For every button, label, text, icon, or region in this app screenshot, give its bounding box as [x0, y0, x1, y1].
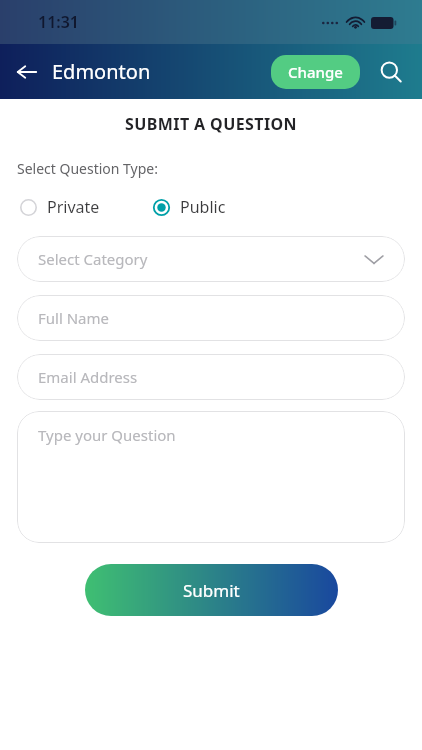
button[interactable]: Public: [153, 194, 226, 220]
button[interactable]: Change: [271, 55, 360, 89]
staticText: Select Category: [38, 249, 148, 269]
button[interactable]: Type your Question: [17, 411, 405, 543]
staticText: Public: [180, 196, 226, 218]
staticText: Email Address: [38, 367, 138, 387]
staticText: 11:31: [38, 11, 80, 33]
button[interactable]: Submit: [85, 564, 338, 616]
staticText: Type your Question: [38, 425, 176, 445]
staticText: SUBMIT A QUESTION: [0, 113, 422, 135]
staticText: Full Name: [38, 308, 109, 328]
staticText: Select Question Type:: [17, 159, 159, 178]
button[interactable]: Full Name: [17, 295, 405, 341]
button[interactable]: Search: [374, 55, 408, 89]
button[interactable]: Private: [20, 194, 100, 220]
button[interactable]: Back: [12, 52, 155, 91]
staticText: Private: [47, 196, 100, 218]
staticText: Submit: [183, 579, 240, 602]
staticText: Edmonton: [52, 58, 151, 85]
button[interactable]: Select Category: [17, 236, 405, 282]
staticText: Change: [288, 62, 343, 82]
button[interactable]: Email Address: [17, 354, 405, 400]
